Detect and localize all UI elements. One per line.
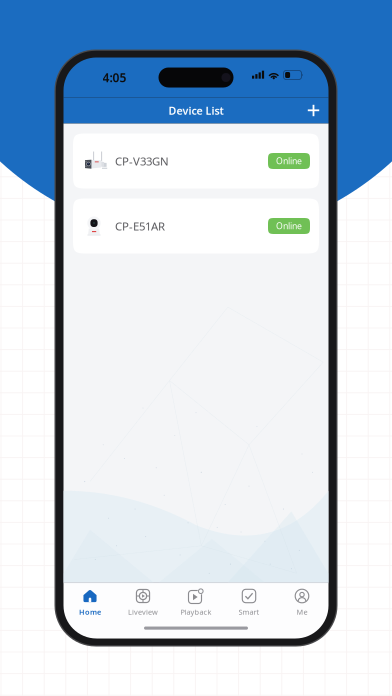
button[interactable]: Playback bbox=[169, 586, 222, 618]
staticText: Liveview bbox=[128, 607, 158, 617]
staticText: 4:05 bbox=[102, 69, 126, 86]
button[interactable]: CP-E51AR bbox=[73, 198, 319, 253]
staticText: CP-E51AR bbox=[115, 218, 165, 234]
button[interactable]: CP-V33GN bbox=[73, 133, 319, 188]
staticText: Online bbox=[276, 220, 302, 232]
staticText: Me bbox=[296, 607, 307, 617]
staticText: Home bbox=[79, 607, 101, 617]
staticText: Playback bbox=[180, 607, 211, 617]
button[interactable]: Smart bbox=[222, 586, 275, 618]
button[interactable]: Add device bbox=[300, 98, 326, 122]
button[interactable]: Me bbox=[275, 586, 328, 618]
staticText: CP-V33GN bbox=[115, 153, 169, 169]
button[interactable]: Home bbox=[63, 586, 116, 618]
button[interactable]: Liveview bbox=[116, 586, 169, 618]
staticText: Device List bbox=[168, 103, 223, 118]
staticText: Online bbox=[276, 155, 302, 167]
staticText: Smart bbox=[238, 607, 259, 617]
